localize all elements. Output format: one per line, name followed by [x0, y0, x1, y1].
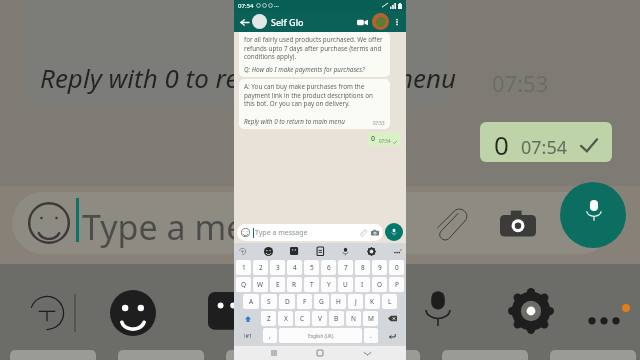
button[interactable]: Emoji [264, 247, 273, 256]
staticText: Type a message [255, 228, 308, 238]
staticText: 6 [327, 263, 331, 272]
button[interactable]: Back [237, 15, 251, 29]
button[interactable]: M [363, 311, 378, 326]
button[interactable]: V [312, 311, 327, 326]
button[interactable]: 7 [338, 260, 353, 275]
button[interactable]: D [279, 294, 295, 309]
button[interactable]: Keyboard settings [367, 247, 376, 256]
button[interactable]: U [338, 277, 353, 292]
button[interactable]: K [365, 294, 380, 309]
button[interactable]: L [382, 294, 397, 309]
staticText: Z [267, 314, 271, 323]
button[interactable]: E [270, 277, 285, 292]
staticText: Q: How do I make payments for purchases? [244, 65, 365, 74]
button[interactable]: English (UK) [279, 328, 362, 343]
staticText: A [249, 297, 254, 306]
button[interactable]: T [304, 277, 319, 292]
staticText: V [318, 314, 322, 323]
staticText: I [361, 280, 364, 289]
staticText: English (UK) [308, 333, 334, 339]
button[interactable]: H [331, 294, 346, 309]
button[interactable]: X [278, 311, 293, 326]
button[interactable]: 8 [355, 260, 370, 275]
button[interactable]: 0 [389, 260, 404, 275]
button[interactable]: Home [313, 346, 327, 360]
staticText: X [284, 314, 288, 323]
staticText: Self Glo [271, 16, 304, 28]
staticText: !#1 [244, 332, 253, 339]
button[interactable]: 4 [287, 260, 302, 275]
staticText: 07:53 [492, 68, 549, 98]
staticText: F [303, 297, 307, 306]
button[interactable]: More options [390, 15, 403, 28]
button[interactable]: Recents [267, 346, 281, 360]
button[interactable]: Self Glo [271, 16, 354, 28]
button[interactable]: !#1 [236, 328, 261, 343]
staticText: 4 [293, 263, 297, 272]
button[interactable]: S [261, 294, 277, 309]
staticText: L [388, 297, 392, 306]
button[interactable]: Backspace [380, 311, 404, 326]
staticText: R [292, 280, 297, 289]
staticText: , [269, 331, 271, 340]
staticText: Q [241, 280, 247, 289]
button[interactable]: 6 [321, 260, 336, 275]
button[interactable]: 9 [372, 260, 387, 275]
staticText: 5 [310, 263, 314, 272]
button[interactable]: 3 [270, 260, 285, 275]
button[interactable]: Type a message [241, 224, 379, 241]
button[interactable]: Record voice message [385, 223, 403, 241]
staticText: Type a mes [82, 204, 262, 250]
button[interactable]: A: You can buy make purchases from the p… [244, 82, 385, 126]
button[interactable]: F [297, 294, 312, 309]
button[interactable]: Clipboard [316, 247, 325, 256]
button[interactable]: R [287, 277, 302, 292]
button[interactable]: Translate [238, 247, 247, 256]
button[interactable]: Y [321, 277, 336, 292]
button[interactable]: C [295, 311, 310, 326]
button[interactable]: More [393, 247, 402, 256]
button[interactable]: Stickers [290, 247, 299, 256]
button[interactable]: Voice input [341, 247, 350, 256]
button[interactable]: I [355, 277, 370, 292]
button[interactable]: , [263, 328, 277, 343]
staticText: 07:54 [521, 135, 568, 160]
staticText: D [285, 297, 290, 306]
staticText: 9 [378, 263, 382, 272]
staticText: 0 [395, 263, 399, 272]
staticText: 0 [494, 127, 509, 162]
button[interactable]: J [348, 294, 363, 309]
staticText: . [370, 331, 372, 340]
button[interactable]: Voice call [372, 13, 389, 30]
staticText: 7 [344, 263, 348, 272]
staticText: 3 [276, 263, 280, 272]
staticText: 07:54 [379, 138, 391, 144]
staticText: G [319, 297, 324, 306]
button[interactable]: W [253, 277, 268, 292]
staticText: K [370, 297, 375, 306]
button[interactable]: O [372, 277, 387, 292]
button[interactable]: Q [236, 277, 251, 292]
button[interactable]: . [364, 328, 378, 343]
staticText: S [267, 297, 271, 306]
staticText: P [395, 280, 399, 289]
staticText: for all fairly used products purchased. … [244, 35, 385, 61]
button[interactable]: Hide keyboard [360, 346, 374, 360]
button[interactable]: 1 [236, 260, 251, 275]
button[interactable]: Shift [236, 311, 259, 326]
staticText: Reply with 0 to return to main menu [40, 60, 457, 95]
button[interactable]: Contact photo [252, 14, 267, 29]
button[interactable]: for all fairly used products purchased. … [244, 35, 385, 74]
button[interactable]: 5 [304, 260, 319, 275]
button[interactable]: Video call [354, 14, 370, 30]
button[interactable]: 0 [371, 134, 397, 144]
button[interactable]: A [243, 294, 259, 309]
button[interactable]: G [314, 294, 329, 309]
button[interactable]: N [346, 311, 361, 326]
button[interactable]: B [329, 311, 344, 326]
staticText: M [368, 314, 374, 323]
button[interactable]: Enter [380, 328, 404, 343]
button[interactable]: P [389, 277, 404, 292]
button[interactable]: 2 [253, 260, 268, 275]
button[interactable]: Z [261, 311, 276, 326]
